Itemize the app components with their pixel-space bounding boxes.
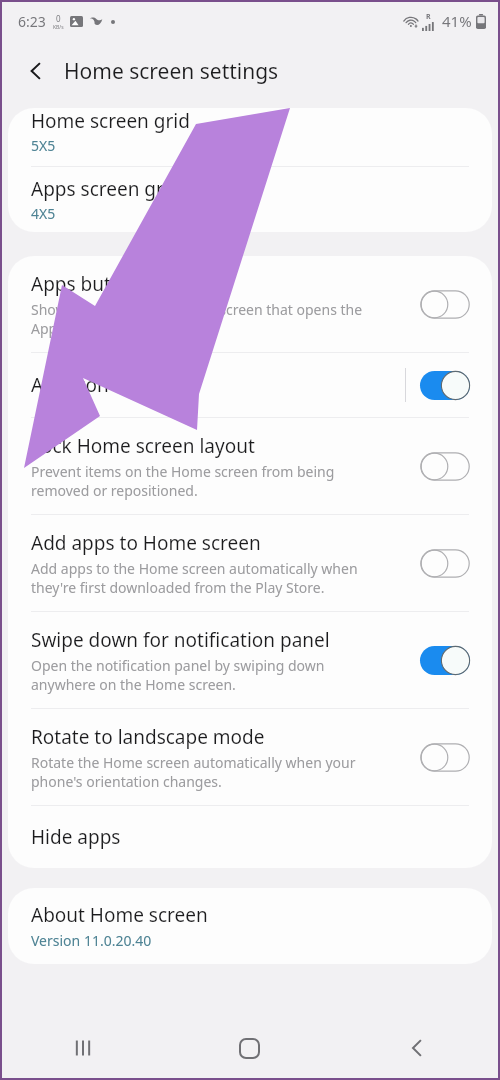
staticText: Show a button on the Home screen that op… [31, 300, 363, 338]
button[interactable]: Recents [0, 1016, 166, 1080]
button[interactable]: About Home screen [8, 888, 492, 964]
button[interactable]: Swipe down for notification panel [8, 612, 492, 708]
staticText: Swipe down for notification panel [31, 627, 330, 653]
button[interactable]: Lock Home screen layout [418, 449, 472, 483]
staticText: Prevent items on the Home screen from be… [31, 462, 335, 500]
staticText: App icon badges [31, 372, 180, 398]
staticText: About Home screen [31, 902, 208, 928]
staticText: Version 11.0.20.40 [31, 931, 152, 950]
staticText: Add apps to the Home screen automaticall… [31, 559, 358, 597]
button[interactable]: Home screen grid [8, 108, 492, 166]
button[interactable]: Back [14, 49, 58, 93]
staticText: 41% [442, 11, 472, 31]
button[interactable]: Apps button [418, 287, 472, 321]
button[interactable]: Lock Home screen layout [8, 418, 492, 514]
button[interactable]: Swipe down for notification panel [418, 643, 472, 677]
button[interactable]: Back [333, 1016, 500, 1080]
button[interactable]: Rotate to landscape mode [8, 709, 492, 805]
staticText: Open the notification panel by swiping d… [31, 656, 325, 694]
staticText: Add apps to Home screen [31, 530, 261, 556]
staticText: Lock Home screen layout [31, 433, 255, 459]
staticText: 0 [56, 13, 61, 24]
staticText: Hide apps [31, 824, 121, 850]
button[interactable]: Home [166, 1016, 333, 1080]
staticText: 6:23 [18, 12, 46, 31]
staticText: Home screen settings [64, 57, 279, 86]
button[interactable]: App icon badges [418, 368, 472, 402]
button[interactable]: Add apps to Home screen [8, 515, 492, 611]
button[interactable]: App icon badges [8, 353, 492, 417]
button[interactable]: Apps button [8, 256, 492, 352]
button[interactable]: Apps screen grid [8, 167, 492, 232]
staticText: R [426, 12, 431, 22]
staticText: KB/s [53, 24, 64, 31]
button[interactable]: Add apps to Home screen [418, 546, 472, 580]
staticText: Home screen grid [31, 108, 190, 134]
staticText: Rotate to landscape mode [31, 724, 265, 750]
button[interactable]: Rotate to landscape mode [418, 740, 472, 774]
button[interactable]: Hide apps [8, 806, 492, 868]
staticText: Apps screen grid [31, 176, 181, 202]
staticText: Apps button [31, 271, 141, 297]
staticText: 5X5 [31, 136, 56, 154]
staticText: 4X5 [31, 204, 56, 223]
staticText: Rotate the Home screen automatically whe… [31, 753, 356, 791]
